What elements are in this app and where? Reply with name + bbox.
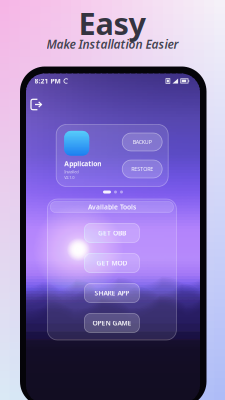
- button[interactable]: GET MOD: [84, 253, 139, 272]
- staticText: 8:21 PM: [34, 77, 60, 85]
- button[interactable]: BACKUP: [122, 133, 162, 151]
- staticText: BACKUP: [133, 138, 152, 146]
- button[interactable]: SHARE APP: [84, 283, 139, 302]
- button[interactable]: RESTORE: [122, 160, 162, 178]
- button[interactable]: Exit: [27, 95, 45, 113]
- staticText: RESTORE: [131, 165, 153, 173]
- staticText: OPEN GAME: [92, 319, 131, 327]
- staticText: GET OBB: [98, 229, 126, 237]
- staticText: Available Tools: [88, 203, 136, 211]
- staticText: GET MOD: [96, 259, 127, 267]
- button[interactable]: OPEN GAME: [84, 313, 139, 332]
- staticText: Easy: [78, 3, 146, 43]
- staticText: V2.1.0: [64, 175, 74, 180]
- staticText: Installed: [64, 169, 78, 174]
- button[interactable]: GET OBB: [84, 223, 139, 242]
- staticText: SHARE APP: [94, 289, 129, 297]
- staticText: Application: [64, 159, 101, 168]
- staticText: Make Installation Easier: [46, 36, 178, 52]
